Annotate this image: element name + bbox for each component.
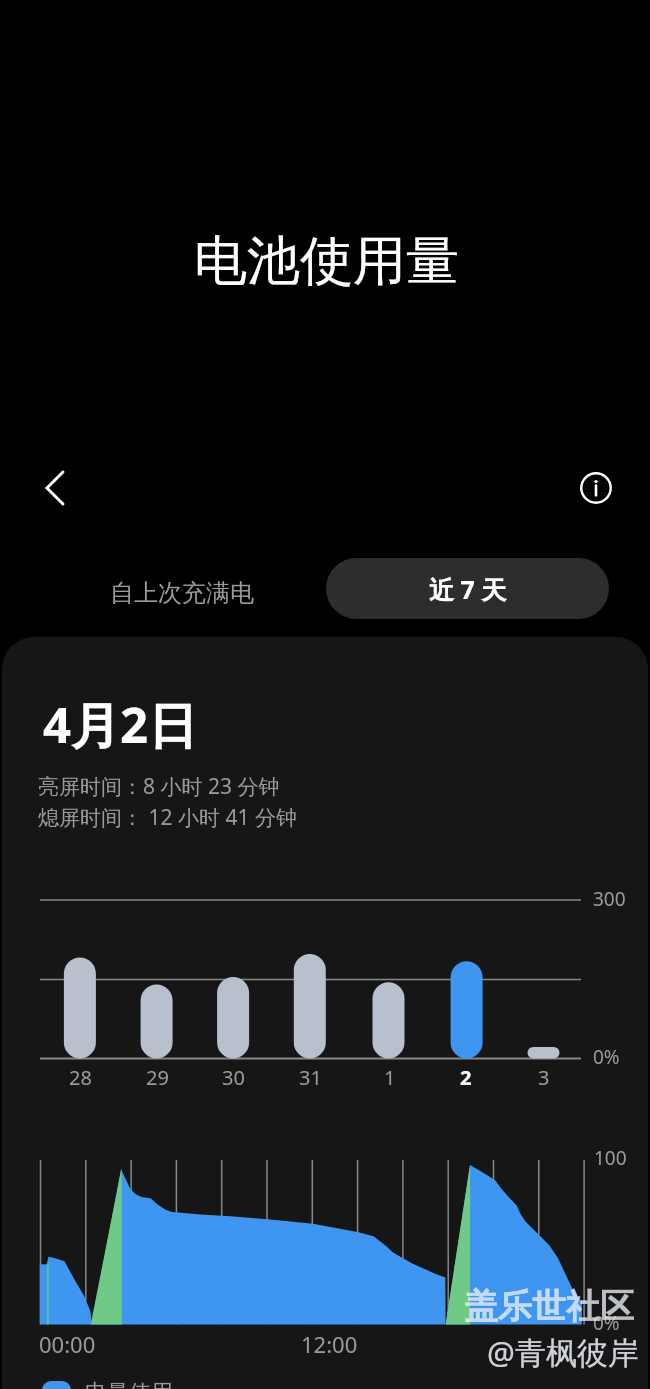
button[interactable]: 近 7 天 <box>326 558 609 619</box>
staticText: 300 <box>593 886 626 912</box>
staticText: 12:00 <box>301 1329 358 1359</box>
staticText: 31 <box>299 1064 322 1091</box>
staticText: 3 <box>538 1064 550 1091</box>
staticText: 28 <box>69 1064 92 1091</box>
staticText: 30 <box>222 1064 245 1091</box>
staticText: 电池使用量 <box>194 228 459 295</box>
staticText: 盖乐世社区 <box>464 1285 634 1328</box>
button[interactable]: 自上次充满电 <box>110 578 254 608</box>
staticText: 亮屏时间：8 小时 23 分钟 <box>38 772 280 801</box>
staticText: @青枫彼岸 <box>487 1331 639 1373</box>
staticText: 电量使用 <box>85 1379 173 1389</box>
staticText: 自上次充满电 <box>110 578 254 608</box>
staticText: 100 <box>594 1145 627 1171</box>
staticText: 2 <box>460 1064 472 1091</box>
staticText: 00:00 <box>39 1329 96 1359</box>
button[interactable]: Back <box>25 463 74 512</box>
staticText: 熄屏时间： 12 小时 41 分钟 <box>38 803 297 832</box>
button[interactable]: Information <box>573 465 619 511</box>
staticText: 4月2日 <box>43 691 198 758</box>
staticText: 1 <box>384 1064 396 1091</box>
staticText: 近 7 天 <box>429 572 507 606</box>
staticText: 29 <box>146 1064 169 1091</box>
staticText: 0% <box>593 1044 620 1070</box>
staticText: 0% <box>593 1310 620 1336</box>
